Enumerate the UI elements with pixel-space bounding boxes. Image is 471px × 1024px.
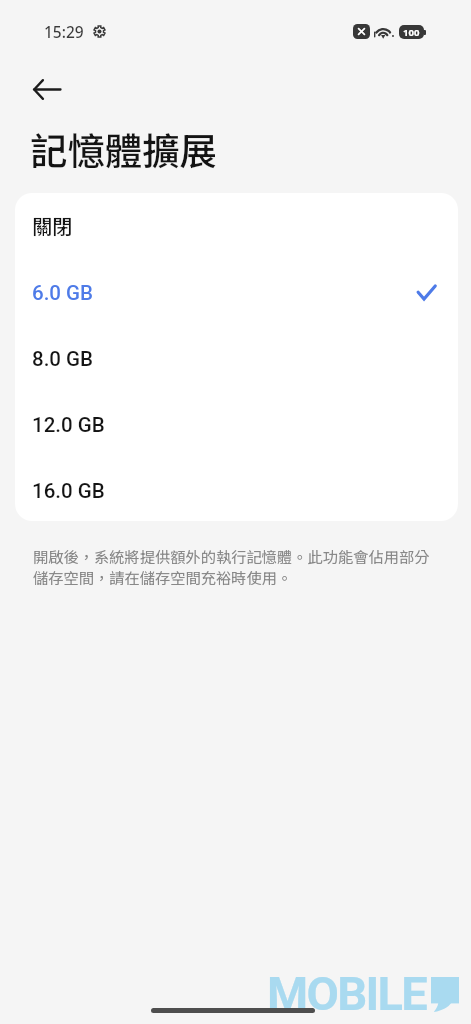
button[interactable]: 6.0 GB xyxy=(15,259,458,325)
button[interactable]: 16.0 GB xyxy=(15,457,458,521)
button[interactable]: 12.0 GB xyxy=(15,391,458,457)
button[interactable]: 8.0 GB xyxy=(15,325,458,391)
staticText: 8.0 GB xyxy=(32,347,93,371)
staticText: MOBILE xyxy=(267,966,426,1021)
staticText: 15:29 xyxy=(44,21,84,42)
button[interactable]: Back xyxy=(21,65,73,113)
staticText: 關閉 xyxy=(32,211,72,240)
staticText: 16.0 GB xyxy=(32,479,105,503)
staticText: 6.0 GB xyxy=(32,281,93,305)
button[interactable]: 關閉 xyxy=(15,193,458,259)
staticText: 記憶體擴展 xyxy=(30,122,217,176)
staticText: 開啟後，系統將提供額外的執行記憶體。此功能會佔用部分儲存空間，請在儲存空間充裕時… xyxy=(33,545,435,588)
staticText: 12.0 GB xyxy=(32,413,105,437)
staticText: 100 xyxy=(403,26,420,39)
